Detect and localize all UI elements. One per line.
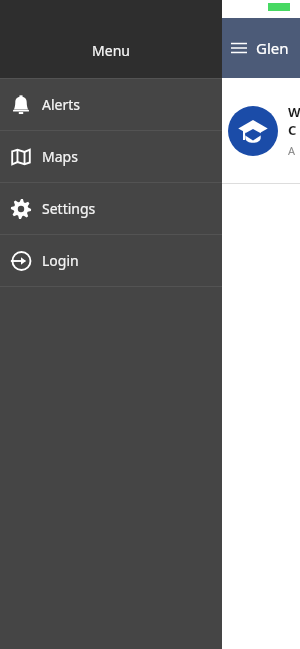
staticText: Login xyxy=(42,251,79,270)
staticText: About xyxy=(288,143,300,158)
button[interactable]: Alerts xyxy=(0,79,222,130)
staticText: Menu xyxy=(92,41,130,60)
staticText: Welcome to xyxy=(288,103,300,121)
staticText: Maps xyxy=(42,147,78,166)
button[interactable]: Welcome to xyxy=(0,78,300,183)
staticText: Glenwood xyxy=(256,38,300,58)
button[interactable]: Open navigation drawer xyxy=(222,31,256,65)
button[interactable]: Settings xyxy=(0,183,222,234)
button[interactable]: Login xyxy=(0,235,222,286)
staticText: Campus xyxy=(288,121,300,139)
button[interactable]: Maps xyxy=(0,131,222,182)
staticText: Alerts xyxy=(42,95,80,114)
staticText: Settings xyxy=(42,199,96,218)
